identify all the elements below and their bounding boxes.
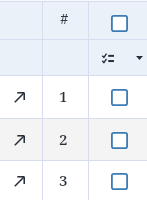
staticText: 2 [59, 129, 68, 149]
staticText: 1 [59, 86, 68, 106]
button[interactable]: Select [107, 169, 131, 193]
button[interactable]: Open row [8, 86, 30, 108]
button[interactable]: Open row [8, 170, 30, 192]
button[interactable]: Select [107, 11, 131, 35]
button[interactable]: Select [107, 85, 131, 109]
button[interactable]: More options [130, 49, 147, 67]
staticText: 3 [59, 170, 68, 190]
button[interactable]: Filter [98, 48, 118, 68]
staticText: # [60, 8, 69, 28]
button[interactable]: Select [107, 128, 131, 152]
button[interactable]: Open row [8, 129, 30, 151]
